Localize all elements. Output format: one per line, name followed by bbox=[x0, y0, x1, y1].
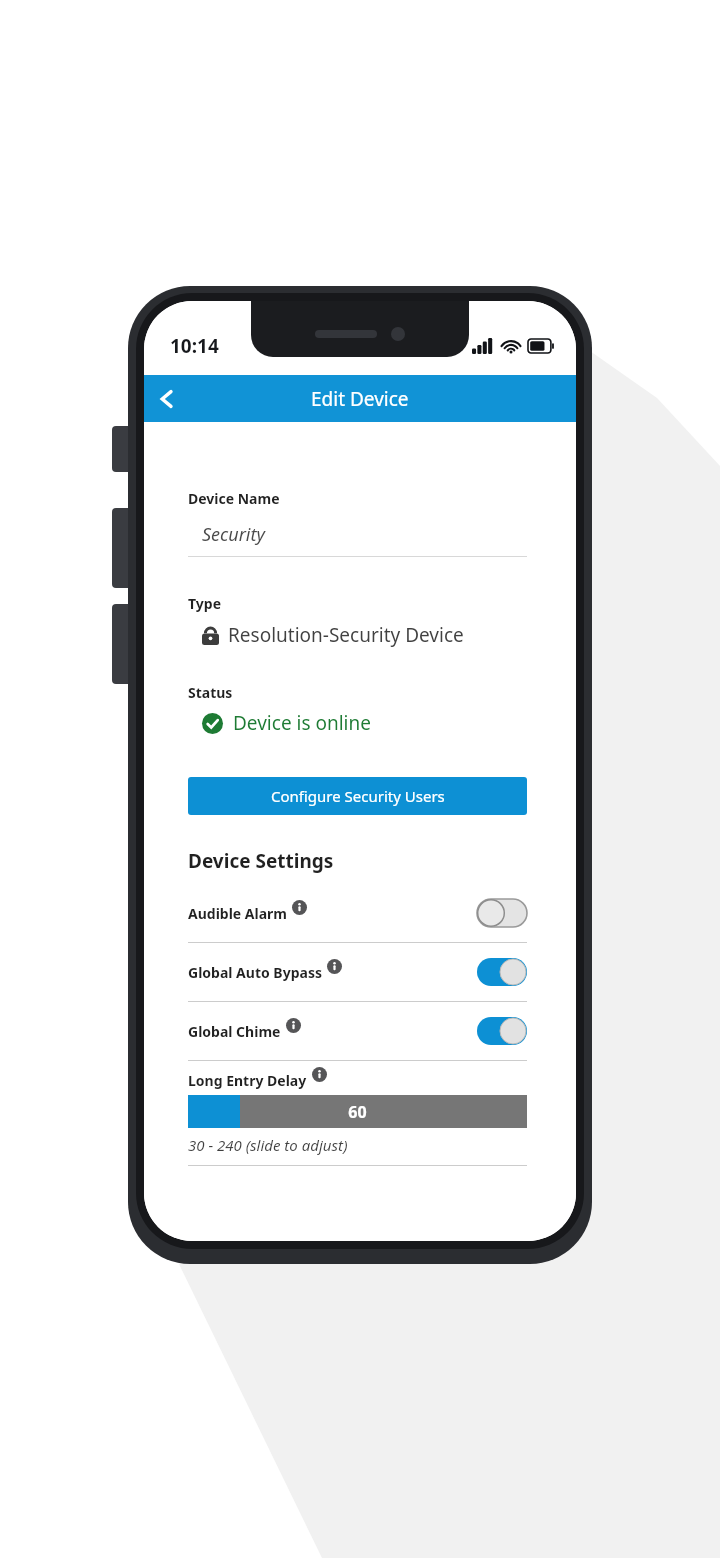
staticText: Long Entry Delay bbox=[188, 1071, 307, 1090]
staticText: Status bbox=[188, 683, 233, 702]
button[interactable]: Audible Alarm bbox=[188, 884, 527, 942]
staticText: 10:14 bbox=[170, 333, 219, 359]
button[interactable]: Back bbox=[144, 375, 190, 422]
staticText: Device Name bbox=[188, 489, 280, 508]
staticText: Global Chime bbox=[188, 1022, 281, 1041]
button[interactable]: Configure Security Users bbox=[188, 777, 527, 815]
staticText: Global Auto Bypass bbox=[188, 963, 322, 982]
staticText: Configure Security Users bbox=[271, 786, 445, 806]
button[interactable]: Toggle on bbox=[477, 958, 527, 986]
button[interactable]: Global Auto Bypass bbox=[188, 943, 527, 1001]
button[interactable]: Toggle on bbox=[477, 1017, 527, 1045]
staticText: Audible Alarm bbox=[188, 904, 287, 923]
staticText: 30 - 240 (slide to adjust) bbox=[188, 1135, 348, 1155]
staticText: Security bbox=[202, 522, 265, 547]
button[interactable]: Security bbox=[188, 522, 527, 557]
staticText: Edit Device bbox=[311, 386, 409, 412]
staticText: Device is online bbox=[233, 710, 371, 736]
button[interactable]: Global Chime bbox=[188, 1002, 527, 1060]
staticText: Resolution-Security Device bbox=[228, 622, 464, 648]
staticText: 60 bbox=[348, 1101, 367, 1123]
button[interactable]: 60 bbox=[188, 1095, 527, 1128]
staticText: Type bbox=[188, 594, 221, 613]
button[interactable]: Toggle off bbox=[477, 899, 527, 927]
staticText: Device Settings bbox=[188, 848, 334, 874]
